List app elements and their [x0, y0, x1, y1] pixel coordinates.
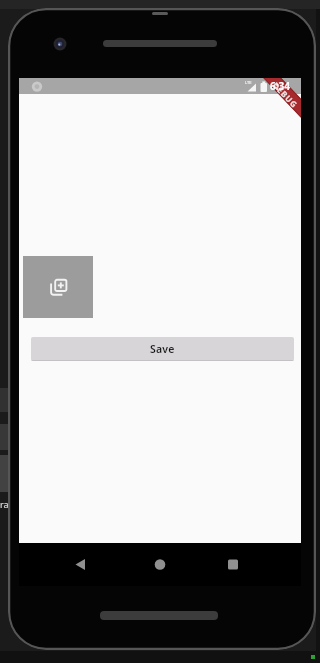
- staticText: LTE: [245, 80, 252, 85]
- button[interactable]: Save: [31, 337, 294, 361]
- staticText: ra: [0, 498, 9, 510]
- staticText: DEBUG: [270, 79, 300, 110]
- staticText: 6:34: [270, 79, 290, 93]
- staticText: Save: [150, 342, 175, 356]
- button[interactable]: [23, 256, 93, 318]
